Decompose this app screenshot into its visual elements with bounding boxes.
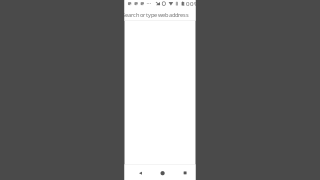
button[interactable]: Search or type web address xyxy=(124,8,195,20)
button[interactable]: Recent apps xyxy=(174,165,196,180)
staticText: 100% xyxy=(182,0,199,8)
button[interactable]: Back xyxy=(129,165,151,180)
button[interactable]: Home xyxy=(152,165,174,180)
staticText: Search or type web address xyxy=(122,11,189,19)
